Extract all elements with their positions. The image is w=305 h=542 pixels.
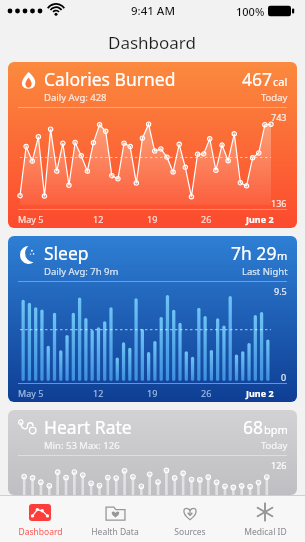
button[interactable]: Sleep [8, 236, 297, 402]
staticText: 68 [243, 415, 264, 439]
staticText: Min: 53 Max: 126 [44, 439, 120, 452]
staticText: Daily Avg: 7h 9m [44, 265, 119, 278]
staticText: 26 [201, 213, 212, 225]
staticText: Sources [174, 526, 206, 538]
staticText: 12 [93, 387, 104, 399]
staticText: 9.5 [274, 285, 287, 297]
staticText: 0 [281, 371, 287, 383]
staticText: Medical ID [244, 526, 287, 538]
staticText: 12 [93, 213, 104, 225]
button[interactable]: Calories Burned [8, 62, 297, 228]
staticText: May 5 [18, 213, 44, 225]
staticText: 126 [271, 459, 287, 471]
staticText: 7h 29 [231, 241, 277, 265]
staticText: Today [261, 439, 288, 452]
button[interactable]: Health Data [80, 496, 150, 542]
staticText: 19 [147, 387, 158, 399]
button[interactable]: Sources [155, 496, 225, 542]
staticText: Today [261, 91, 288, 104]
staticText: 467 [242, 67, 273, 91]
staticText: 9:41 AM [131, 3, 175, 19]
staticText: 100% [236, 4, 265, 19]
button[interactable]: Dashboard [5, 496, 75, 542]
staticText: Sleep [44, 241, 89, 265]
staticText: Last Night [242, 265, 288, 278]
staticText: June 2 [246, 213, 274, 225]
staticText: Health Data [91, 526, 139, 538]
staticText: 743 [271, 111, 287, 123]
staticText: June 2 [246, 387, 274, 399]
staticText: Daily Avg: 428 [44, 91, 107, 104]
staticText: bpm [264, 422, 288, 437]
staticText: m [277, 248, 288, 263]
staticText: 136 [271, 197, 287, 209]
staticText: Calories Burned [44, 67, 176, 91]
staticText: Heart Rate [44, 415, 132, 439]
button[interactable]: Heart Rate [8, 410, 297, 495]
staticText: 26 [201, 387, 212, 399]
staticText: cal [273, 74, 288, 89]
staticText: 19 [147, 213, 158, 225]
staticText: May 5 [18, 387, 44, 399]
staticText: Dashboard [108, 31, 197, 54]
button[interactable]: Medical ID [230, 496, 300, 542]
staticText: Dashboard [18, 526, 63, 538]
